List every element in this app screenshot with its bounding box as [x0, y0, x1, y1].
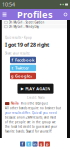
staticText: All other bands require no brainer but	[5, 106, 61, 110]
staticText: g	[11, 73, 14, 79]
staticText: Credit: Naila	[27, 96, 44, 99]
staticText: Twitter	[15, 65, 29, 71]
staticText: Naila	[11, 102, 19, 105]
staticText: PLAY AGAIN	[25, 86, 50, 91]
staticText: Oh My Girl - Windy Day	[9, 25, 39, 28]
staticText: Oh My Girl - Secret Garden	[9, 21, 45, 24]
button[interactable]: Menu	[0, 9, 9, 20]
button[interactable]: Search	[61, 9, 70, 20]
button[interactable]: Share	[32, 141, 37, 146]
button[interactable]: ▶	[17, 84, 53, 94]
staticText: Share your results:	[5, 52, 30, 55]
staticText: the local list credit to guess and your	[5, 125, 57, 128]
staticText: Google+	[15, 73, 32, 79]
button[interactable]: Share	[26, 141, 31, 146]
staticText: Quiz results • Kpop	[5, 36, 32, 39]
button[interactable]: Share	[39, 141, 44, 146]
staticText: This is the BEST quiz	[21, 102, 48, 105]
staticText: t	[28, 141, 30, 147]
button[interactable]: Oh My Girl - Windy Day	[0, 25, 70, 28]
staticText: t	[11, 65, 13, 71]
staticText: your results differ. Quiz all you need	[5, 111, 57, 115]
button[interactable]: Share	[45, 141, 50, 146]
staticText: I got 19 of 28 right	[5, 41, 49, 48]
staticText: favorite bands. Stayed for yourself!	[5, 130, 52, 133]
staticText: Facebook	[15, 57, 34, 63]
staticText: f	[11, 57, 13, 63]
staticText: f	[22, 141, 24, 147]
button[interactable]: t	[10, 65, 36, 71]
staticText: Profiles	[17, 8, 53, 21]
staticText: p	[46, 141, 49, 147]
button[interactable]: g	[10, 73, 36, 79]
staticText: 10:54	[2, 1, 15, 8]
staticText: ▶	[21, 86, 24, 91]
staticText: because a non-2AM results, and most	[5, 116, 56, 119]
button[interactable]: Share	[20, 141, 25, 146]
staticText: in	[33, 141, 37, 147]
staticText: g	[40, 141, 43, 147]
button[interactable]: f	[10, 57, 36, 63]
button[interactable]: Oh My Girl - Secret Garden	[0, 21, 70, 24]
staticText: of the people are in the group we	[5, 120, 56, 124]
